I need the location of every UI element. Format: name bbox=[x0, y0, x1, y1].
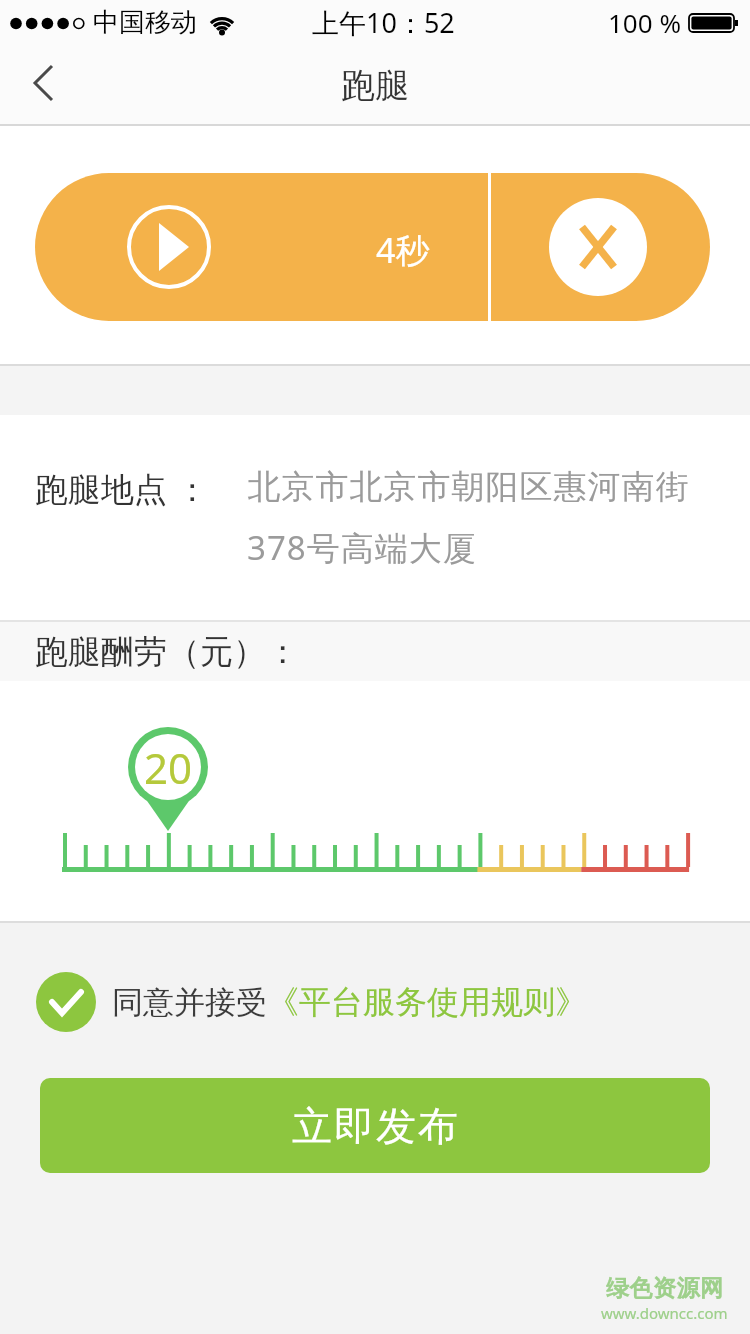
staticText: 跑腿 bbox=[341, 64, 409, 107]
staticText: 跑腿酬劳（元）： bbox=[35, 631, 299, 673]
staticText: 20 bbox=[144, 739, 193, 796]
staticText: 绿色资源网 bbox=[606, 1274, 724, 1303]
button[interactable] bbox=[549, 198, 647, 296]
staticText: 北京市北京市朝阳区惠河南街 bbox=[247, 466, 689, 508]
button[interactable]: 《平台服务使用规则》 bbox=[267, 982, 587, 1022]
staticText: www.downcc.com bbox=[601, 1303, 728, 1323]
staticText: 378号高端大厦 bbox=[247, 525, 477, 570]
staticText: 100 % bbox=[608, 5, 681, 40]
button[interactable] bbox=[0, 681, 750, 921]
button[interactable]: 4秒 bbox=[35, 173, 710, 321]
staticText: 4秒 bbox=[376, 227, 430, 273]
staticText: 跑腿地点 ： bbox=[35, 466, 209, 511]
staticText: 中国移动 bbox=[93, 6, 197, 39]
staticText: 立即发布 bbox=[291, 1101, 459, 1151]
staticText: 同意并接受 bbox=[112, 983, 267, 1022]
button[interactable] bbox=[16, 57, 72, 113]
button[interactable]: 同意并接受 bbox=[36, 972, 587, 1032]
button[interactable]: 立即发布 bbox=[40, 1078, 710, 1173]
staticText: 上午10：52 bbox=[312, 4, 455, 41]
